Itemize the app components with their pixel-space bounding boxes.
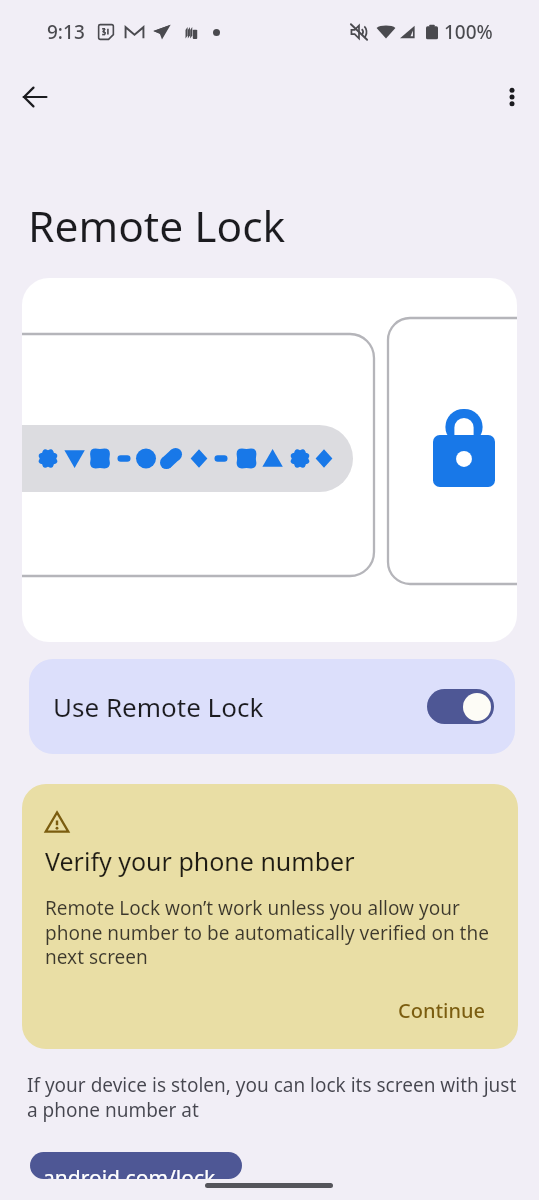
staticText: android.com/lock (43, 1164, 216, 1179)
staticText: Verify your phone number (45, 844, 355, 878)
staticText: Remote Lock won’t work unless you allow … (45, 895, 498, 970)
staticText: If your device is stolen, you can lock i… (27, 1072, 522, 1123)
staticText: Continue (398, 997, 486, 1024)
staticText: 100% (444, 19, 493, 45)
staticText: Remote Lock (28, 197, 286, 255)
staticText: 9:13 (47, 19, 85, 45)
button[interactable]: Continue (390, 989, 494, 1032)
button[interactable]: android.com/lock (30, 1152, 242, 1179)
staticText: Use Remote Lock (53, 689, 264, 724)
button[interactable]: More options (487, 72, 537, 122)
button[interactable]: Use Remote Lock (29, 659, 515, 754)
button[interactable]: Back (10, 72, 60, 122)
